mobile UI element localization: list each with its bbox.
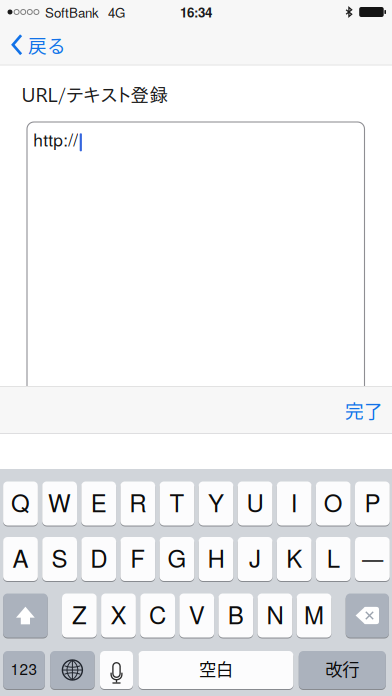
staticText: E	[91, 485, 107, 519]
button[interactable]: H	[199, 536, 233, 581]
staticText: R	[129, 485, 146, 519]
staticText: X	[110, 597, 126, 631]
button[interactable]: J	[238, 536, 272, 581]
staticText: 完了	[345, 396, 383, 423]
staticText: S	[52, 540, 68, 575]
button[interactable]: S	[42, 536, 77, 581]
button[interactable]: P	[355, 481, 390, 526]
staticText: 16:34	[180, 2, 212, 22]
button[interactable]: 123	[3, 650, 45, 689]
button[interactable]: N	[257, 593, 292, 638]
button[interactable]: B	[218, 593, 253, 638]
button[interactable]: 完了	[336, 386, 392, 434]
staticText: N	[266, 597, 283, 631]
button[interactable]: D	[81, 536, 116, 581]
button[interactable]: —	[355, 536, 390, 581]
button[interactable]: V	[179, 593, 214, 638]
button[interactable]: A	[3, 536, 38, 581]
button[interactable]: X	[101, 593, 136, 638]
button[interactable]: Q	[3, 481, 38, 526]
staticText: D	[90, 540, 107, 575]
staticText: 4G	[108, 2, 125, 22]
button[interactable]: K	[277, 536, 312, 581]
button[interactable]: F	[120, 536, 155, 581]
staticText: —	[362, 542, 383, 573]
button[interactable]: C	[140, 593, 175, 638]
staticText: P	[364, 485, 380, 519]
staticText: A	[12, 540, 28, 575]
staticText: U	[247, 485, 264, 519]
staticText: F	[130, 540, 145, 575]
button[interactable]: 改行	[299, 650, 386, 689]
button[interactable]: L	[316, 536, 351, 581]
staticText: W	[48, 485, 71, 519]
staticText: Q	[11, 485, 30, 519]
button[interactable]: Z	[62, 593, 97, 638]
button[interactable]: O	[316, 481, 351, 526]
button[interactable]: G	[159, 536, 194, 581]
staticText: H	[207, 540, 224, 575]
staticText: T	[169, 485, 184, 519]
button[interactable]: E	[81, 481, 116, 526]
button[interactable]: 戻る	[0, 24, 76, 66]
staticText: O	[324, 485, 343, 519]
staticText: 改行	[325, 656, 359, 681]
staticText: M	[304, 597, 324, 631]
staticText: G	[167, 540, 186, 575]
staticText: 123	[10, 657, 37, 679]
staticText: C	[149, 597, 166, 631]
staticText: http://	[33, 126, 78, 151]
staticText: V	[189, 597, 205, 631]
button[interactable]: U	[238, 481, 272, 526]
button[interactable]: M	[297, 593, 331, 638]
button[interactable]: W	[42, 481, 77, 526]
staticText: K	[286, 540, 302, 575]
button[interactable]: Shift	[3, 593, 48, 638]
staticText: SoftBank	[45, 2, 99, 22]
staticText: L	[327, 540, 340, 575]
staticText: URL/テキスト登録	[21, 85, 168, 104]
staticText: 空白	[199, 656, 233, 681]
button[interactable]: 空白	[138, 650, 293, 689]
button[interactable]: I	[277, 481, 312, 526]
staticText: 戻る	[28, 31, 66, 58]
button[interactable]: Next keyboard	[50, 650, 95, 689]
button[interactable]: Delete	[346, 593, 389, 638]
button[interactable]: T	[159, 481, 194, 526]
button[interactable]: Y	[199, 481, 233, 526]
staticText: Y	[208, 485, 224, 519]
staticText: Z	[72, 597, 87, 631]
staticText: B	[228, 597, 244, 631]
button[interactable]: Dictation	[100, 650, 133, 689]
staticText: I	[291, 485, 298, 519]
button[interactable]: R	[120, 481, 155, 526]
staticText: J	[249, 540, 261, 575]
